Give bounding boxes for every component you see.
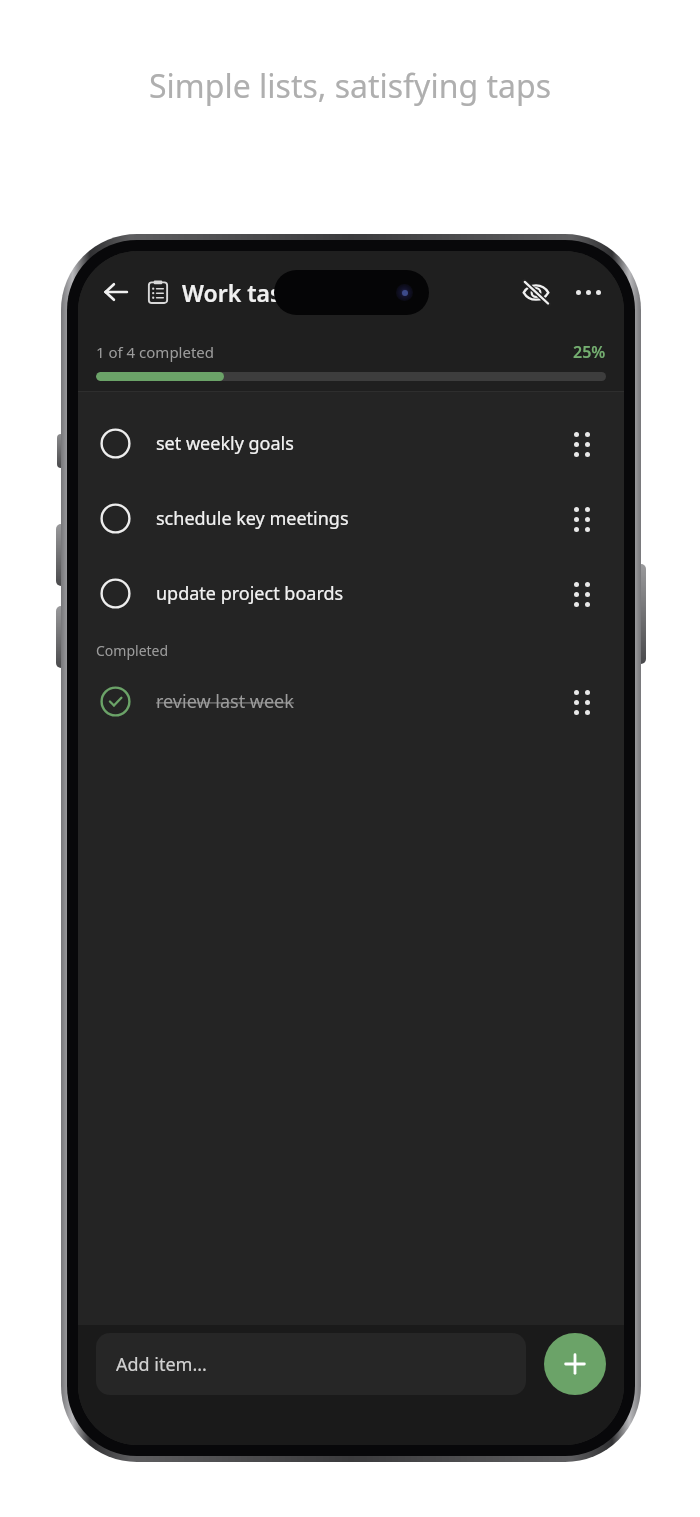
staticText: 1 of 4 completed xyxy=(96,342,215,362)
button[interactable]: Reorder xyxy=(562,424,602,464)
button[interactable]: Reorder xyxy=(562,682,602,722)
staticText: Add item... xyxy=(116,1352,207,1377)
button[interactable]: Reorder xyxy=(562,499,602,539)
staticText: review last week xyxy=(156,689,294,714)
staticText: set weekly goals xyxy=(156,431,294,456)
button[interactable]: Back xyxy=(92,268,140,316)
staticText: update project boards xyxy=(156,581,344,606)
button[interactable]: set weekly goals xyxy=(78,406,624,481)
button[interactable]: schedule key meetings xyxy=(78,481,624,556)
button[interactable]: review last week xyxy=(78,664,624,739)
button[interactable]: Hide completed xyxy=(512,268,560,316)
staticText: schedule key meetings xyxy=(156,506,349,531)
button[interactable]: More options xyxy=(566,270,610,314)
button[interactable]: Add item... xyxy=(96,1333,526,1395)
button[interactable]: Add item xyxy=(544,1333,606,1395)
staticText: Work tasks xyxy=(182,277,307,308)
staticText: Completed xyxy=(96,641,169,660)
button[interactable]: update project boards xyxy=(78,556,624,631)
staticText: 25% xyxy=(573,341,606,363)
staticText: Simple lists, satisfying taps xyxy=(0,64,700,108)
button[interactable]: Reorder xyxy=(562,574,602,614)
